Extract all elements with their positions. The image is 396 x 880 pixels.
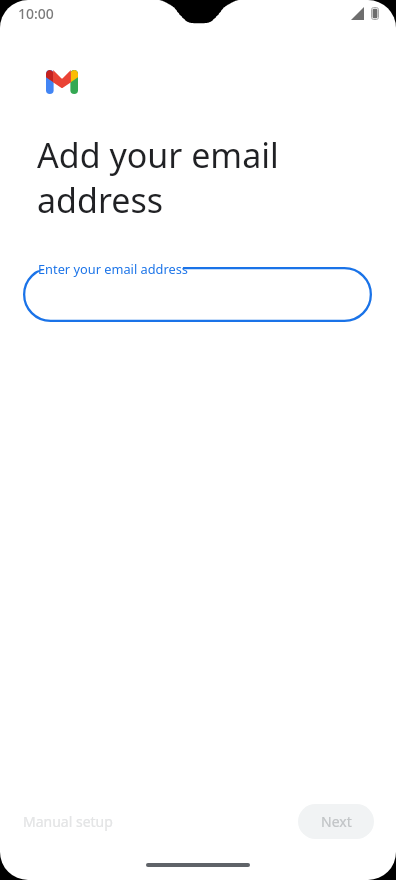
staticText: 10:00: [18, 4, 54, 23]
button[interactable]: Enter your email address: [23, 267, 372, 322]
button[interactable]: Manual setup: [10, 802, 126, 841]
staticText: Manual setup: [23, 812, 113, 831]
staticText: Enter your email address: [38, 260, 188, 277]
button[interactable]: Next: [298, 804, 374, 839]
staticText: Add your email address: [37, 132, 279, 223]
staticText: Next: [321, 812, 352, 831]
